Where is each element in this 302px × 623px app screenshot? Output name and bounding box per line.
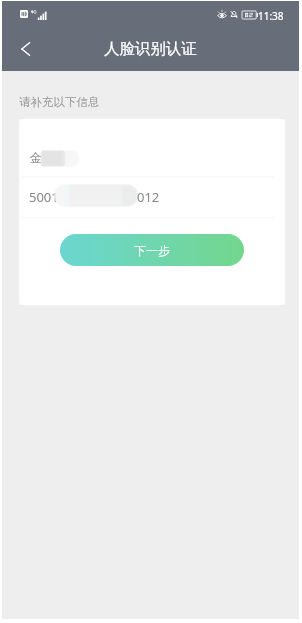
staticText: 请补充以下信息	[19, 95, 100, 109]
staticText: 5001	[29, 188, 59, 206]
staticText: 金	[30, 150, 42, 165]
staticText: 11:38	[258, 9, 284, 23]
button[interactable]: 5001	[19, 178, 285, 218]
staticText: 下一步	[134, 243, 170, 258]
staticText: 人脸识别认证	[104, 39, 197, 59]
button[interactable]: 金	[19, 119, 285, 177]
button[interactable]: Back	[8, 32, 42, 66]
staticText: 012	[137, 188, 160, 206]
button[interactable]: 下一步	[60, 234, 244, 266]
